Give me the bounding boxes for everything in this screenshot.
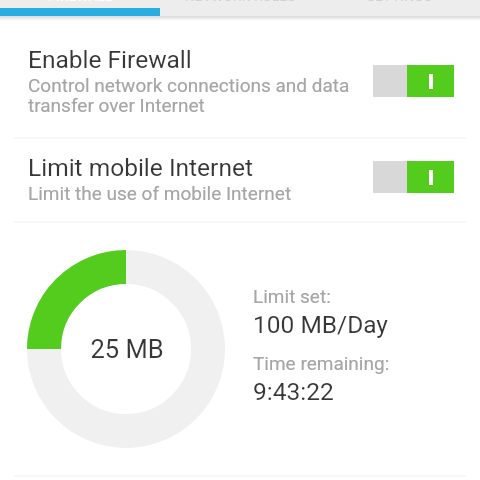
button[interactable]: Data used 25 MB of the daily limit bbox=[27, 250, 225, 448]
staticText: 25 MB bbox=[90, 334, 164, 364]
staticText: 9:43:22 bbox=[253, 377, 334, 406]
staticText: Limit the use of mobile Internet bbox=[28, 182, 292, 204]
button[interactable]: Enable Firewall bbox=[0, 45, 480, 116]
button[interactable]: Limit mobile Internet bbox=[0, 153, 480, 204]
button[interactable]: NETWORK RULES bbox=[160, 0, 320, 4]
button[interactable]: FIREWALL bbox=[0, 0, 160, 4]
button[interactable]: Toggle Enable Firewall bbox=[373, 65, 454, 97]
staticText: Time remaining: bbox=[253, 352, 390, 374]
staticText: SETTINGS bbox=[367, 0, 433, 4]
staticText: Limit mobile Internet bbox=[28, 153, 253, 182]
staticText: Limit set: bbox=[253, 285, 331, 307]
staticText: NETWORK RULES bbox=[185, 0, 296, 4]
staticText: Control network connections and data tra… bbox=[28, 74, 350, 116]
staticText: 100 MB/Day bbox=[253, 310, 388, 339]
button[interactable]: SETTINGS bbox=[320, 0, 480, 4]
button[interactable]: Toggle Limit mobile Internet bbox=[373, 161, 454, 193]
staticText: FIREWALL bbox=[48, 0, 113, 4]
staticText: Enable Firewall bbox=[28, 45, 192, 74]
